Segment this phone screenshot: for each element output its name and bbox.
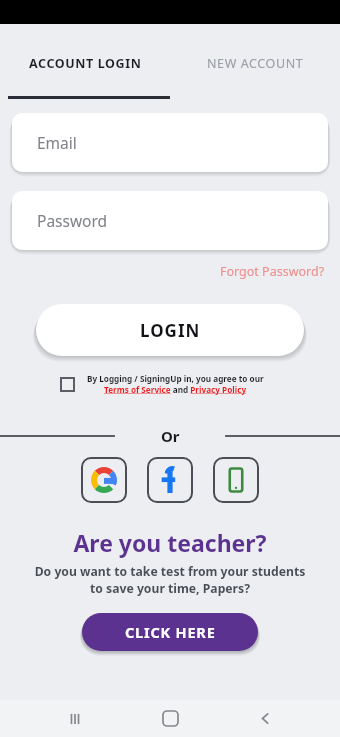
button[interactable]: LOGIN bbox=[36, 304, 304, 356]
button[interactable]: Home bbox=[150, 700, 190, 737]
button[interactable]: Sign in with phone number bbox=[213, 457, 259, 503]
button[interactable]: ACCOUNT LOGIN bbox=[0, 24, 170, 102]
staticText: By Logging / SigningUp in, you agree to … bbox=[87, 373, 264, 384]
button[interactable]: Forgot Password? bbox=[220, 263, 325, 280]
staticText: ACCOUNT LOGIN bbox=[29, 55, 142, 72]
button[interactable]: Agree to terms checkbox bbox=[60, 377, 75, 392]
button[interactable]: Email bbox=[12, 113, 328, 172]
button[interactable]: Recent apps bbox=[55, 700, 95, 737]
staticText: LOGIN bbox=[140, 319, 201, 342]
button[interactable]: CLICK HERE bbox=[82, 613, 258, 651]
button[interactable]: NEW ACCOUNT bbox=[170, 24, 340, 102]
staticText: Do you want to take test from your stude… bbox=[12, 563, 328, 597]
staticText: Email bbox=[37, 132, 77, 153]
button[interactable]: Password bbox=[12, 191, 328, 250]
button[interactable]: Sign in with Facebook bbox=[147, 457, 193, 503]
button[interactable]: Terms of Service and Privacy Policy bbox=[104, 384, 247, 395]
staticText: Are you teacher? bbox=[0, 527, 340, 558]
button[interactable]: Sign in with Google bbox=[81, 457, 127, 503]
staticText: Password bbox=[37, 210, 108, 231]
staticText: NEW ACCOUNT bbox=[207, 55, 304, 72]
staticText: CLICK HERE bbox=[125, 622, 216, 642]
staticText: Or bbox=[161, 426, 180, 446]
button[interactable]: Back bbox=[245, 700, 285, 737]
